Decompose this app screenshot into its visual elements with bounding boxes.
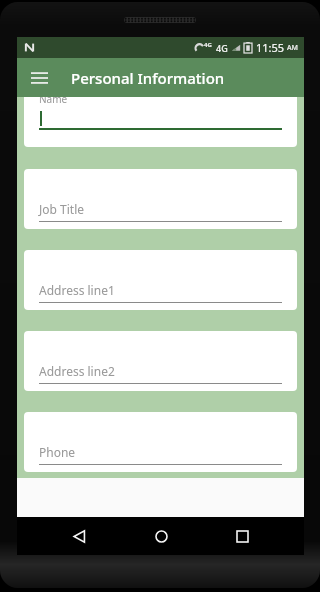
button[interactable]: Name [24,97,297,147]
button[interactable]: Home [141,517,181,555]
staticText: 11:55 [256,40,285,55]
button[interactable]: Phone [24,412,297,472]
staticText: Job Title [39,201,85,217]
staticText: AM [287,43,299,53]
staticText: Personal Information [71,68,225,88]
button[interactable]: Job Title [24,169,297,229]
staticText: Address line1 [39,282,115,298]
staticText: 4G [216,42,228,54]
button[interactable]: Address line2 [24,331,297,391]
staticText: Address line2 [39,363,115,379]
staticText: Name [39,97,68,106]
staticText: 4G [204,41,212,49]
staticText: Phone [39,444,76,460]
button[interactable]: Back [59,517,99,555]
button[interactable]: Open navigation menu [23,62,55,94]
button[interactable]: Recent apps [222,517,262,555]
button[interactable]: Address line1 [24,250,297,310]
